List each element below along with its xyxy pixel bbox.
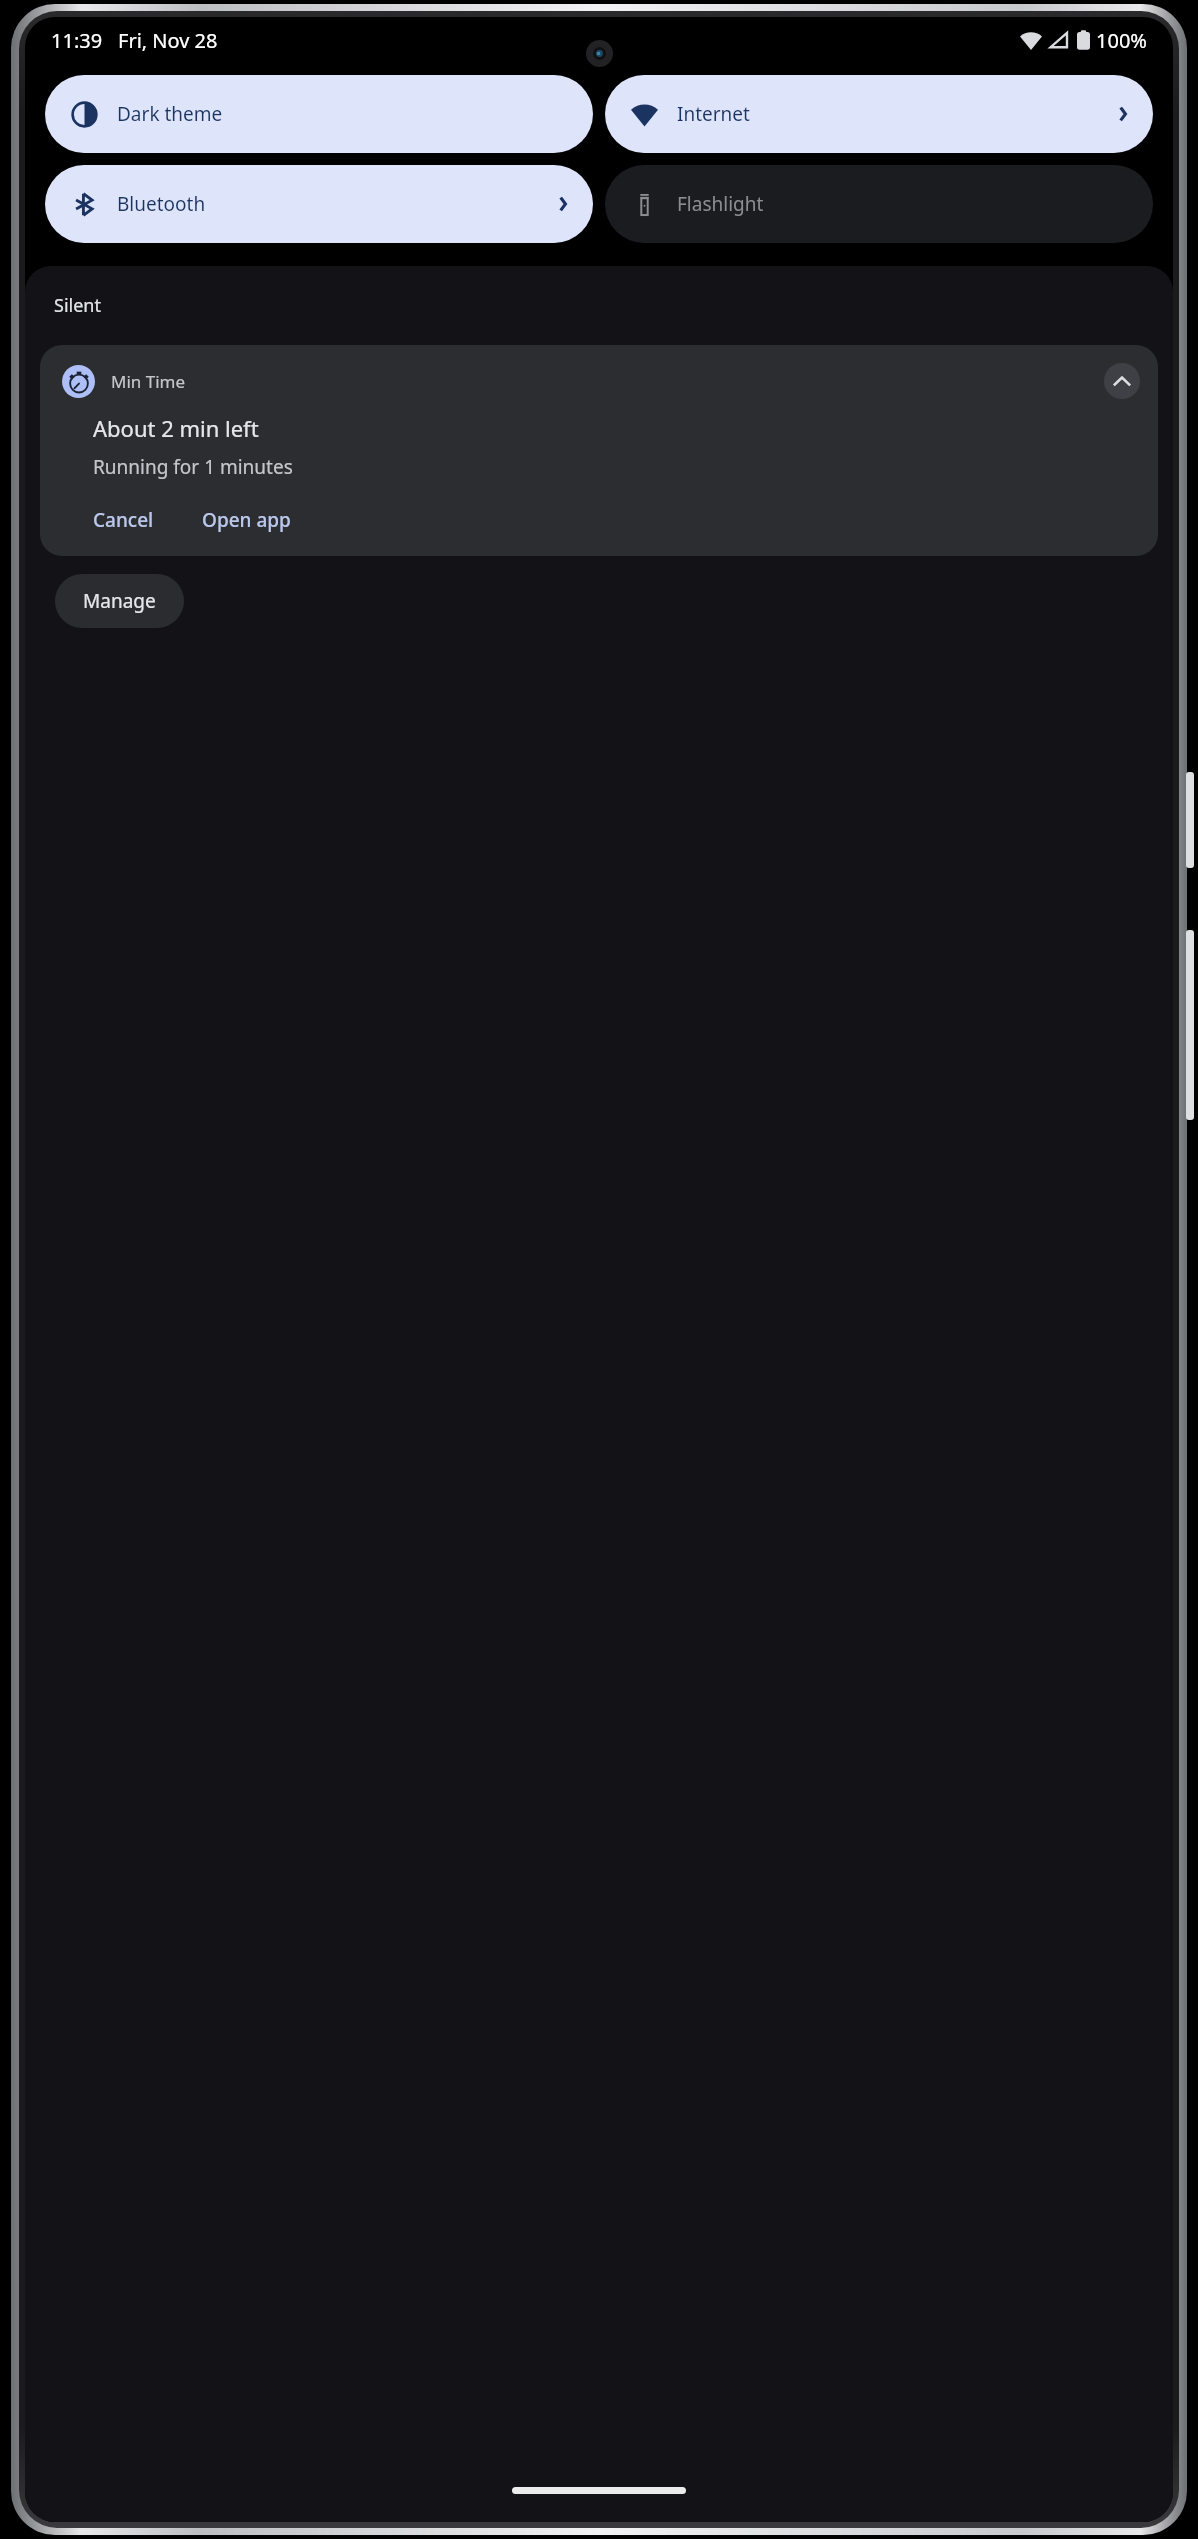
- staticText: Dark theme: [117, 101, 573, 127]
- staticText: 11:39: [51, 27, 103, 54]
- staticText: Min Time: [111, 370, 1104, 393]
- staticText: Flashlight: [677, 191, 1133, 217]
- staticText: Cancel: [93, 507, 154, 533]
- button[interactable]: Flashlight: [605, 165, 1153, 243]
- button[interactable]: Min Time: [40, 345, 1158, 556]
- staticText: Manage: [83, 588, 156, 614]
- staticText: Internet: [677, 101, 1113, 127]
- staticText: 100%: [1096, 27, 1147, 54]
- button[interactable]: Open app: [187, 498, 306, 542]
- button[interactable]: Manage: [55, 574, 184, 628]
- staticText: Fri, Nov 28: [118, 27, 218, 54]
- button[interactable]: Bluetooth: [45, 165, 593, 243]
- staticText: Running for 1 minutes: [93, 454, 293, 480]
- button[interactable]: Internet: [605, 75, 1153, 153]
- staticText: Open app: [202, 507, 291, 533]
- button[interactable]: Dark theme: [45, 75, 593, 153]
- staticText: Silent: [54, 293, 101, 318]
- button[interactable]: Collapse notification: [1104, 363, 1140, 399]
- staticText: About 2 min left: [93, 413, 259, 443]
- staticText: Bluetooth: [117, 191, 553, 217]
- button[interactable]: Cancel: [78, 498, 169, 542]
